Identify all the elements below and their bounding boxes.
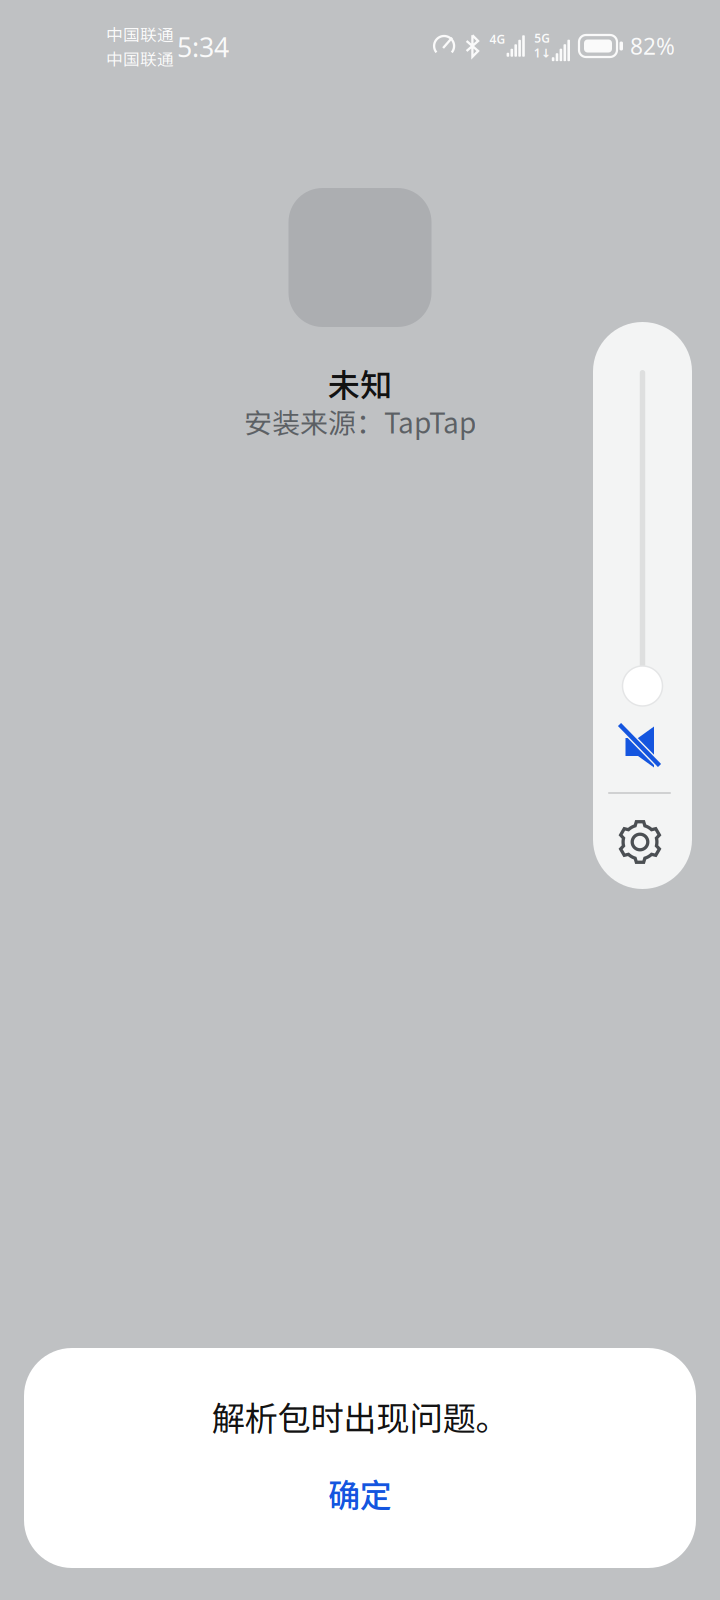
staticText: 5:34 bbox=[177, 29, 229, 65]
staticText: 5G bbox=[534, 30, 550, 46]
staticText: 安装来源：TapTap bbox=[244, 401, 476, 441]
staticText: 未知 bbox=[328, 360, 392, 406]
button[interactable]: Media volume bbox=[593, 370, 692, 706]
button[interactable]: 确定 bbox=[24, 1462, 696, 1524]
staticText: 4G bbox=[490, 31, 506, 47]
staticText: 确定 bbox=[328, 1470, 392, 1516]
staticText: 1↓ bbox=[534, 45, 551, 61]
staticText: 中国联通 bbox=[106, 46, 174, 70]
button[interactable]: Mute bbox=[616, 722, 662, 768]
staticText: 解析包时出现问题。 bbox=[211, 1392, 508, 1440]
staticText: 82% bbox=[630, 31, 675, 61]
button[interactable]: Sound settings bbox=[618, 820, 662, 864]
staticText: 中国联通 bbox=[106, 22, 174, 46]
